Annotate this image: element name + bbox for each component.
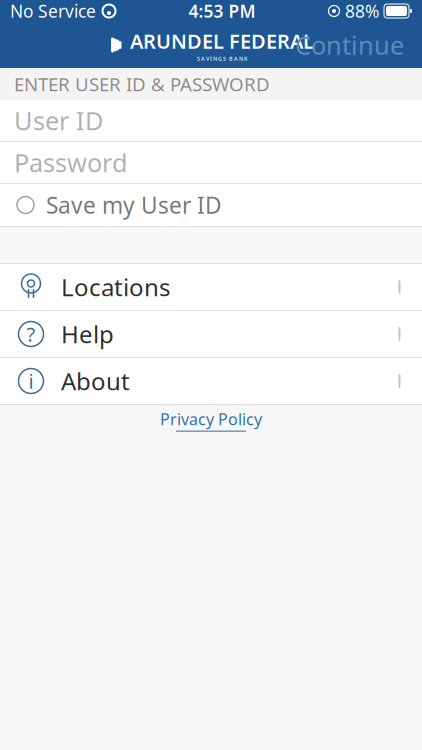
staticText: About <box>61 365 130 397</box>
staticText: ? <box>26 321 35 347</box>
button[interactable]: Save my User ID <box>0 184 422 226</box>
button[interactable]: Locations <box>0 264 422 310</box>
staticText: No Service <box>10 0 96 22</box>
button[interactable]: User ID <box>0 100 422 141</box>
staticText: Continue <box>295 28 404 62</box>
button[interactable]: Privacy Policy <box>152 402 270 438</box>
staticText: Save my User ID <box>46 190 222 220</box>
staticText: ARUNDEL FEDERAL <box>130 28 314 54</box>
staticText: 4:53 PM <box>188 0 255 22</box>
staticText: Password <box>14 146 128 179</box>
staticText: Help <box>61 318 114 350</box>
staticText: S A V I N G S B A N K <box>197 55 247 62</box>
button[interactable]: ? <box>0 311 422 357</box>
staticText: User ID <box>14 104 103 137</box>
staticText: ENTER USER ID & PASSWORD <box>14 72 270 96</box>
staticText: Privacy Policy <box>160 408 262 430</box>
staticText: 88% <box>345 0 379 22</box>
button[interactable]: Continue <box>283 20 416 70</box>
button[interactable]: Password <box>0 142 422 183</box>
staticText: i <box>28 368 33 394</box>
staticText: Locations <box>61 271 170 303</box>
button[interactable]: i <box>0 358 422 404</box>
